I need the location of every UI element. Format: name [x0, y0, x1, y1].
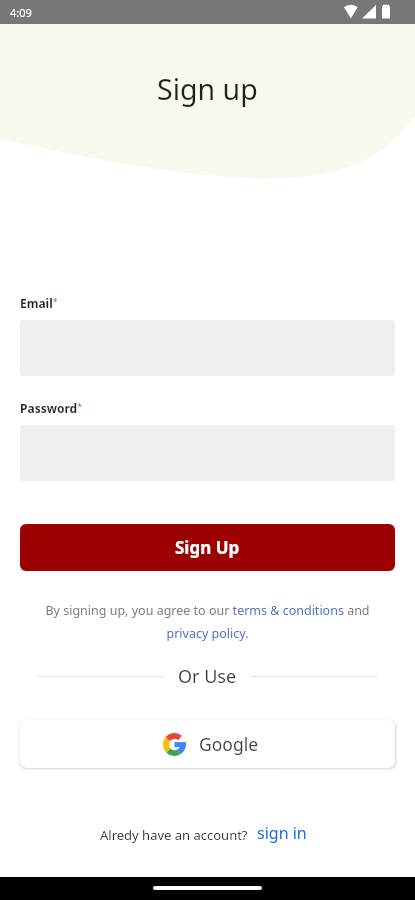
button[interactable]: Sign Up	[20, 524, 395, 571]
staticText: Email*	[20, 295, 58, 311]
staticText: Password*	[20, 400, 83, 416]
button[interactable]: Google	[20, 720, 395, 768]
staticText: By signing up, you agree to our terms & …	[40, 602, 375, 642]
staticText: 4:09	[10, 5, 32, 20]
staticText: Google	[199, 732, 259, 756]
button[interactable]: sign in	[257, 822, 307, 844]
staticText: Sign up	[157, 70, 258, 109]
staticText: Or Use	[178, 664, 237, 689]
staticText: Alredy have an account?	[100, 826, 248, 844]
staticText: sign in	[257, 822, 307, 844]
staticText: Sign Up	[175, 536, 240, 559]
